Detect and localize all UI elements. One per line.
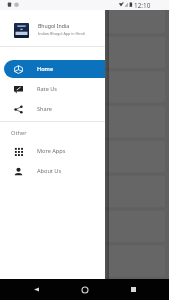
button[interactable]: Recents [121, 279, 145, 300]
button[interactable]: About Us [4, 162, 105, 180]
button[interactable]: Home [4, 60, 105, 78]
staticText: Other [11, 129, 27, 137]
staticText: 12:10 [134, 1, 151, 10]
button[interactable]: More Apps [4, 142, 105, 160]
staticText: Bhugol India [38, 22, 70, 29]
button[interactable]: Share [4, 100, 105, 118]
staticText: About Us [37, 167, 62, 175]
staticText: Home [37, 65, 54, 73]
staticText: Rate Us [37, 85, 58, 93]
staticText: Indian Bhugol App in Hindi [38, 31, 85, 36]
button[interactable]: Back [24, 279, 48, 300]
staticText: More Apps [37, 147, 66, 155]
staticText: Share [37, 105, 53, 113]
button[interactable]: Rate Us [4, 80, 105, 98]
button[interactable]: Home [73, 279, 97, 300]
